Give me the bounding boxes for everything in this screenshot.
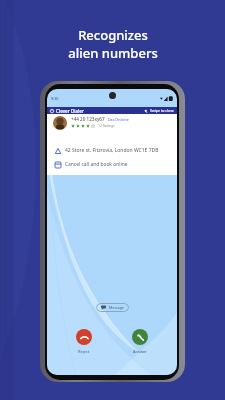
staticText: Cancel call and book online bbox=[65, 161, 128, 168]
staticText: alien numbers bbox=[68, 44, 158, 62]
staticText: Swipe to close bbox=[150, 108, 174, 113]
button[interactable]: Clever Dialer bbox=[47, 107, 177, 114]
staticText: Message bbox=[109, 305, 124, 310]
button[interactable]: Answer bbox=[132, 329, 148, 345]
button[interactable]: Cancel call and book online bbox=[47, 161, 177, 168]
staticText: 9:30 bbox=[51, 96, 59, 101]
button[interactable]: 42 Store st, Fitzrovia, London WC1E 7DB bbox=[47, 147, 177, 154]
staticText: Clever Dialer bbox=[56, 108, 84, 114]
staticText: Das Örtliche bbox=[108, 117, 129, 122]
button[interactable]: Message bbox=[96, 303, 129, 312]
button[interactable]: Reject bbox=[76, 329, 92, 345]
staticText: 42 Store st, Fitzrovia, London WC1E 7DB bbox=[65, 147, 159, 154]
staticText: Answer bbox=[133, 349, 147, 354]
staticText: 12 Ratings bbox=[98, 123, 115, 128]
staticText: Recognizes bbox=[78, 26, 148, 44]
staticText: +44 20 123xy67 bbox=[71, 116, 105, 122]
staticText: Reject bbox=[78, 349, 90, 354]
